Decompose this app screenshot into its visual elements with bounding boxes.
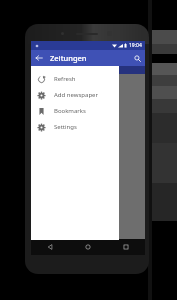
button[interactable]: Add newspaper xyxy=(31,87,119,103)
button[interactable]: Recent apps xyxy=(107,239,145,255)
button[interactable]: Back xyxy=(31,50,47,66)
staticText: Refresh xyxy=(54,75,76,83)
staticText: Add newspaper xyxy=(54,91,98,99)
button[interactable]: Home xyxy=(69,239,107,255)
staticText: Settings xyxy=(54,123,77,131)
button[interactable]: Bookmarks xyxy=(31,103,119,119)
staticText: 19:04 xyxy=(129,42,142,49)
button[interactable]: Back xyxy=(31,239,69,255)
staticText: Zeitungen xyxy=(50,53,87,63)
button[interactable]: Settings xyxy=(31,119,119,135)
staticText: Bookmarks xyxy=(54,107,86,115)
button[interactable]: Search xyxy=(129,50,145,66)
button[interactable]: Refresh xyxy=(31,71,119,87)
